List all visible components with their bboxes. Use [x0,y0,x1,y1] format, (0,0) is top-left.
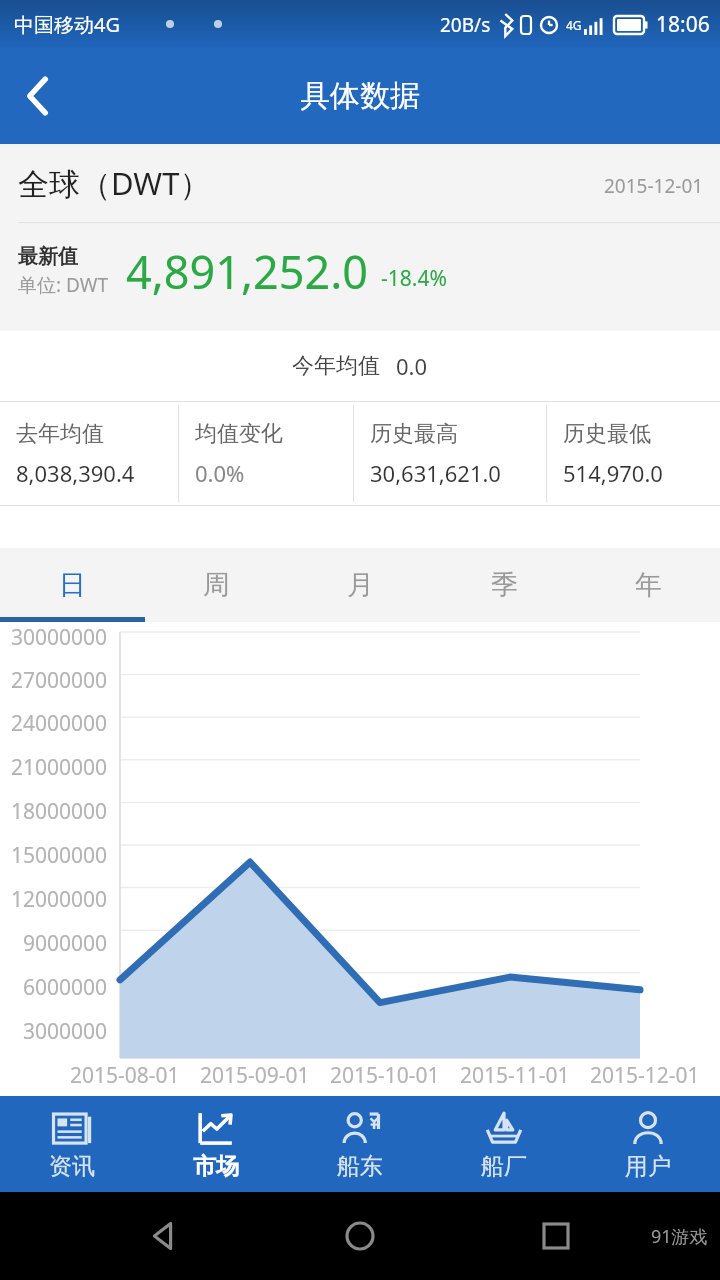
staticText: 4,891,252.0 [126,241,369,302]
staticText: 27000000 [11,666,108,695]
staticText: 市场 [193,1152,239,1181]
staticText: 24000000 [11,709,108,738]
staticText: 历史最低 [563,420,651,448]
staticText: 均值变化 [195,420,283,448]
staticText: 6000000 [23,973,108,1002]
staticText: 0.0% [195,458,245,488]
staticText: 单位: DWT [18,272,108,298]
button[interactable]: Recents [524,1204,588,1268]
button[interactable]: 资讯 [0,1096,144,1192]
staticText: 用户 [625,1152,671,1181]
staticText: 船东 [337,1152,383,1181]
button[interactable]: 月 [288,548,432,622]
button[interactable]: Back [0,58,76,134]
staticText: 2015-08-01 [70,1061,180,1090]
staticText: 12000000 [11,885,108,914]
staticText: 18000000 [11,797,108,826]
staticText: 0.0 [396,351,428,381]
staticText: 30,631,621.0 [370,458,501,488]
staticText: 季 [491,568,518,602]
staticText: 2015-10-01 [330,1061,440,1090]
button[interactable]: 周 [144,548,288,622]
staticText: 具体数据 [300,77,420,115]
staticText: 91游戏 [651,1224,708,1249]
staticText: 最新值 [18,244,78,269]
staticText: 18:06 [656,10,710,39]
button[interactable]: 季 [432,548,576,622]
staticText: 月 [347,568,374,602]
staticText: 2015-11-01 [460,1061,570,1090]
button[interactable]: 市场 [144,1096,288,1192]
staticText: 2015-09-01 [200,1061,310,1090]
staticText: 历史最高 [370,420,458,448]
staticText: 中国移动4G [14,11,120,38]
staticText: 2015-12-01 [604,173,704,199]
button[interactable]: 历史最高 [354,402,546,505]
staticText: 21000000 [11,753,108,782]
staticText: 年 [635,568,662,602]
staticText: 全球（DWT） [18,162,211,204]
button[interactable]: 日 [0,548,144,622]
staticText: 2015-12-01 [590,1061,700,1090]
button[interactable]: 去年均值 [0,402,178,505]
staticText: 今年均值 [292,352,380,380]
staticText: 3000000 [23,1017,108,1046]
staticText: 4G [566,17,582,33]
button[interactable]: Home [328,1204,392,1268]
button[interactable]: 年 [576,548,720,622]
button[interactable]: 船厂 [432,1096,576,1192]
staticText: 15000000 [11,841,108,870]
staticText: 514,970.0 [563,458,663,488]
staticText: -18.4% [381,264,447,293]
staticText: 日 [59,568,86,602]
staticText: 30000000 [11,623,108,652]
staticText: 资讯 [49,1152,95,1181]
staticText: 去年均值 [16,420,104,448]
staticText: 9000000 [23,929,108,958]
staticText: 周 [203,568,230,602]
staticText: 8,038,390.4 [16,458,135,488]
button[interactable]: 用户 [576,1096,720,1192]
staticText: 船厂 [481,1152,527,1181]
button[interactable]: 历史最低 [547,402,720,505]
button[interactable]: 均值变化 [179,402,353,505]
button[interactable]: Back [132,1204,196,1268]
staticText: 20B/s [440,12,491,38]
button[interactable]: 船东 [288,1096,432,1192]
